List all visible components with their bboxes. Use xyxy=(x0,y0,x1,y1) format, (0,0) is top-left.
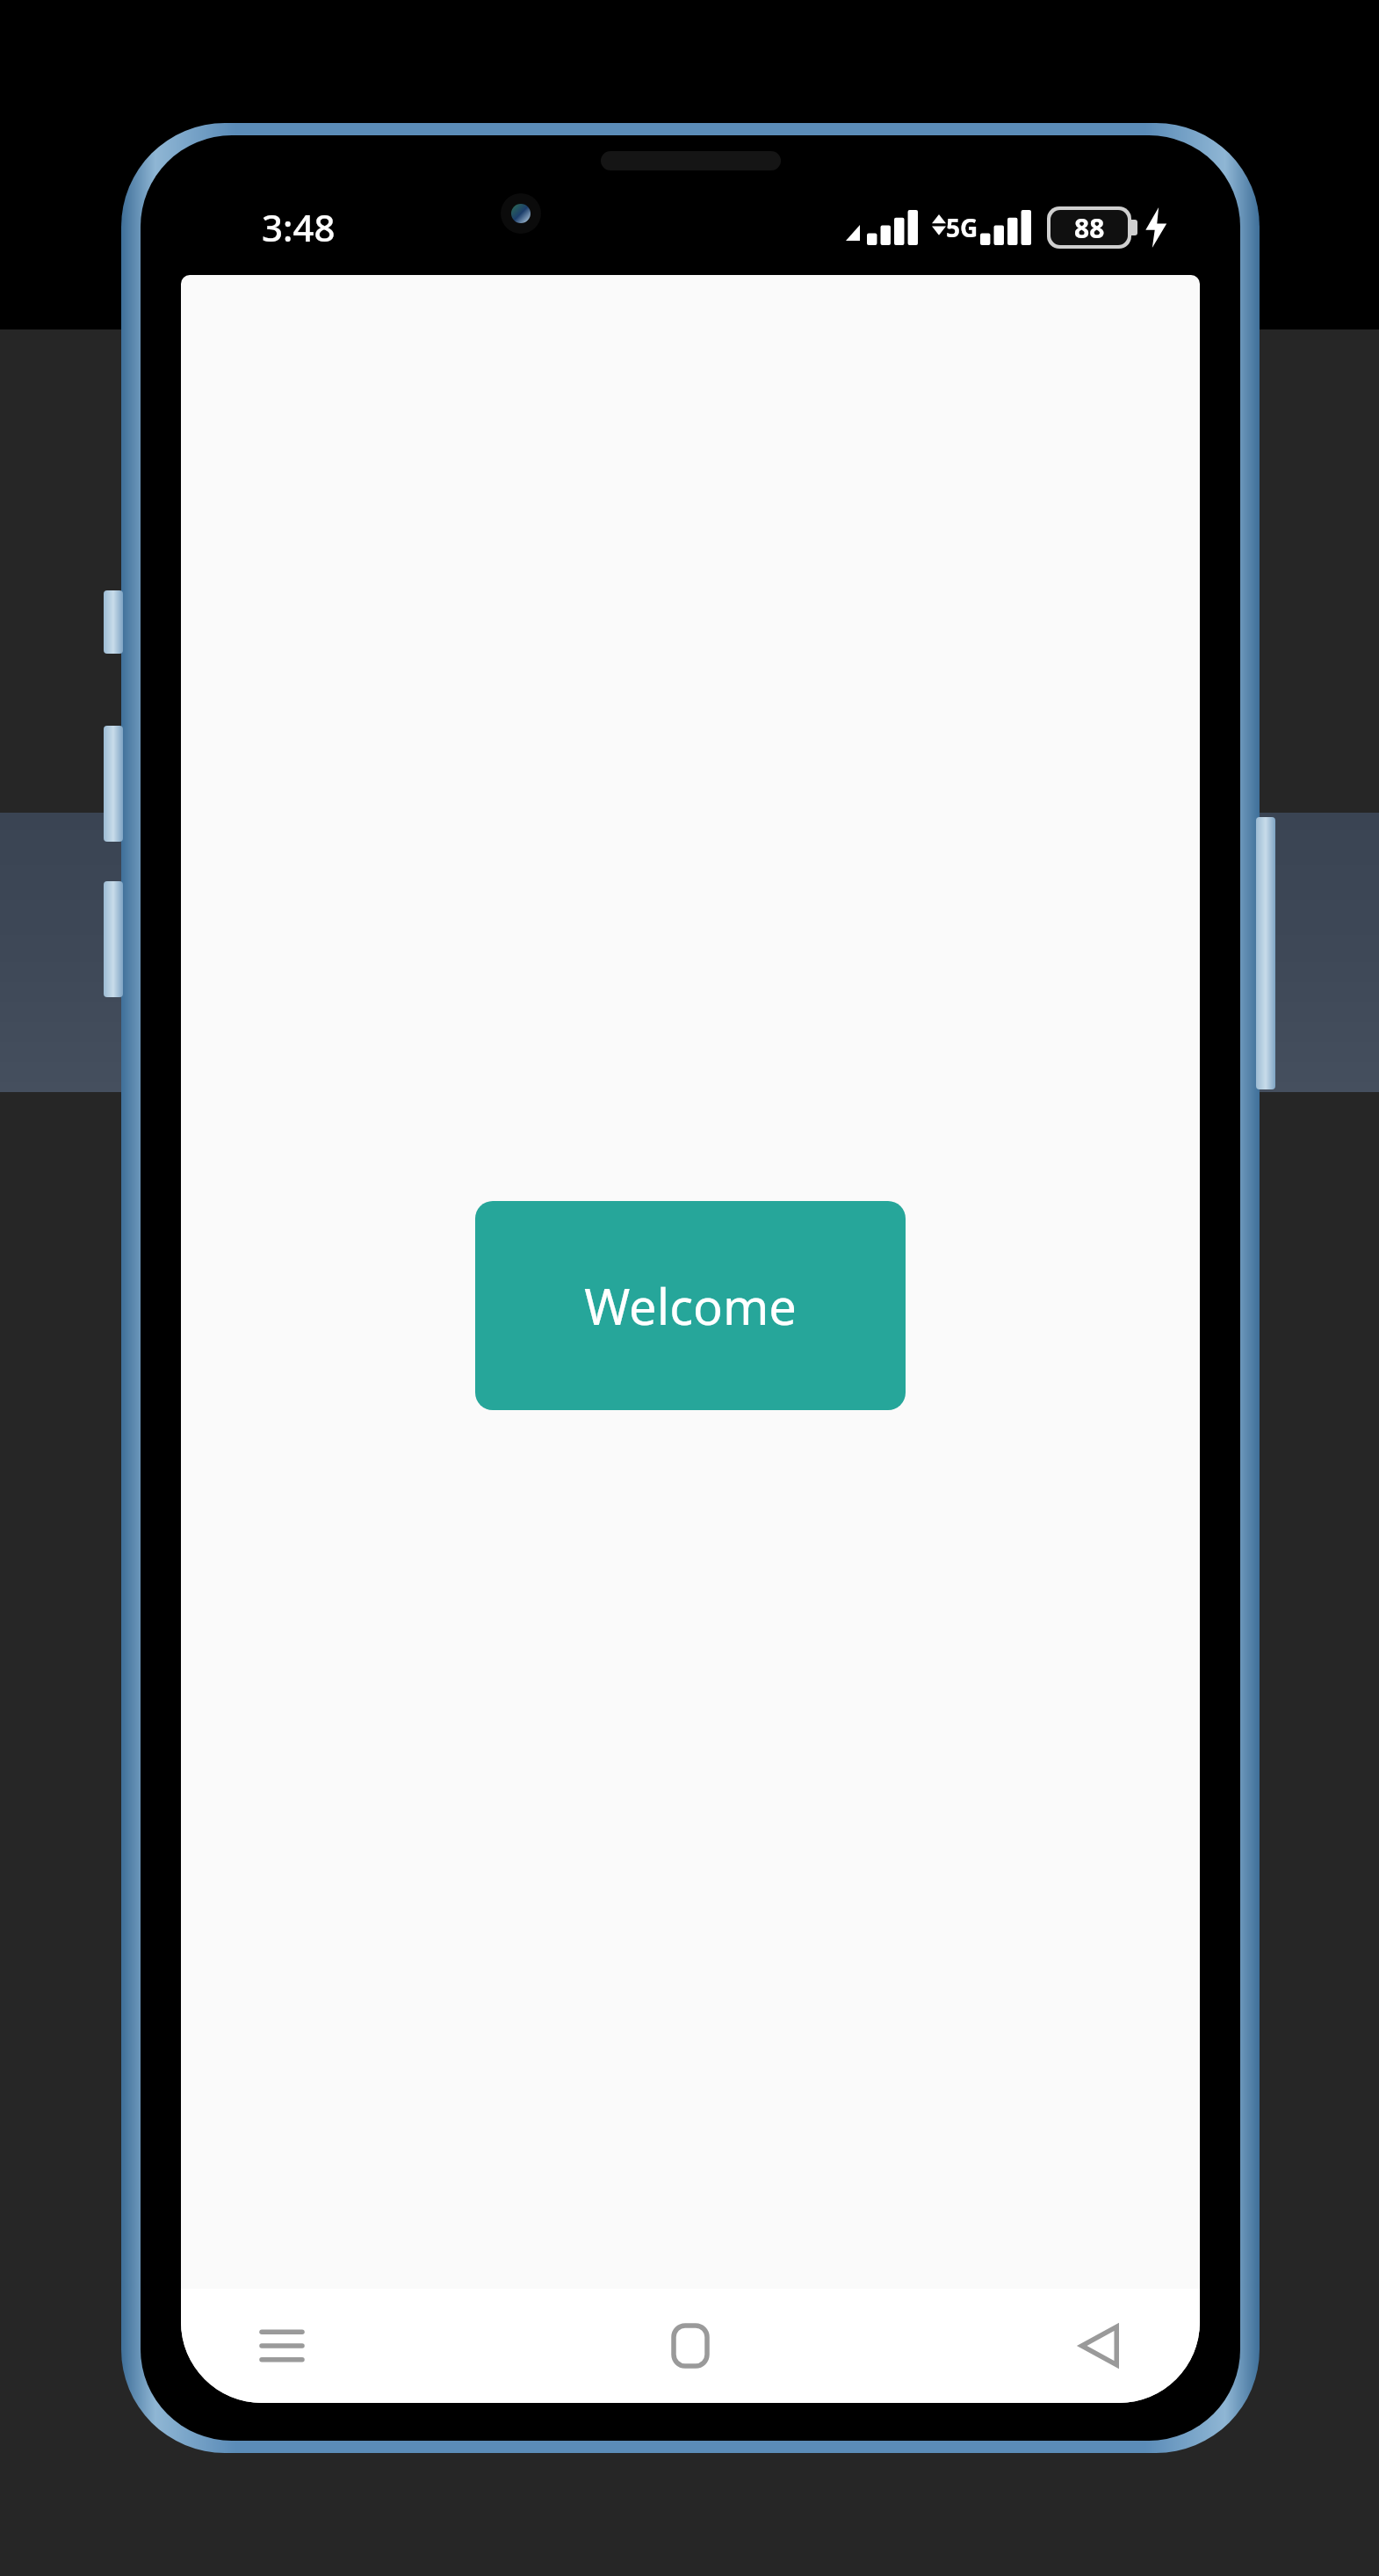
staticText: 88 xyxy=(1074,210,1105,245)
staticText: Welcome xyxy=(584,1272,797,1339)
staticText: 5G xyxy=(946,211,978,244)
button[interactable]: Home xyxy=(642,2297,739,2394)
staticText: 3:48 xyxy=(262,202,336,252)
button[interactable]: Back xyxy=(1050,2297,1147,2394)
button[interactable]: Welcome xyxy=(475,1201,906,1410)
button[interactable]: Recents xyxy=(234,2297,330,2394)
